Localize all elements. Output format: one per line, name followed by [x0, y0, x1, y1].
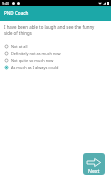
staticText: Not at all [11, 44, 28, 49]
button[interactable]: Definitely not as much now [0, 50, 111, 57]
button[interactable]: Not at all [0, 43, 111, 50]
button[interactable]: As much as I always could [0, 64, 111, 71]
button[interactable]: Next [83, 153, 105, 175]
staticText: PND Coach [4, 10, 29, 16]
staticText: Definitely not as much now [11, 51, 61, 56]
staticText: Next [88, 167, 100, 174]
staticText: As much as I always could [11, 65, 59, 70]
staticText: Not quite so much now [11, 58, 54, 63]
staticText: 9:40 [2, 1, 10, 6]
staticText: I have been able to laugh and see the fu… [4, 24, 101, 36]
button[interactable]: Not quite so much now [0, 57, 111, 64]
